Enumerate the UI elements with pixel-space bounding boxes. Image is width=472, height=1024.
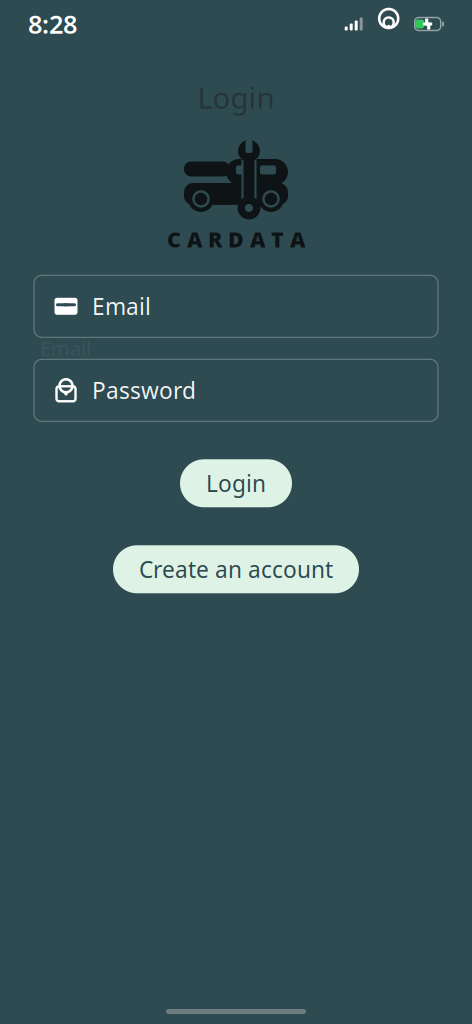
button[interactable]: Password bbox=[34, 359, 438, 421]
staticText: C A R D A T A bbox=[167, 225, 305, 253]
staticText: Login bbox=[197, 78, 274, 117]
button[interactable]: Create an account bbox=[113, 545, 359, 593]
staticText: Email bbox=[92, 291, 151, 321]
staticText: Email bbox=[40, 335, 91, 362]
staticText: Login bbox=[206, 468, 266, 498]
staticText: Create an account bbox=[139, 554, 333, 584]
button[interactable]: Email bbox=[34, 275, 438, 337]
staticText: Password bbox=[92, 375, 196, 405]
button[interactable]: Login bbox=[180, 459, 292, 507]
staticText: 8:28 bbox=[28, 7, 77, 41]
